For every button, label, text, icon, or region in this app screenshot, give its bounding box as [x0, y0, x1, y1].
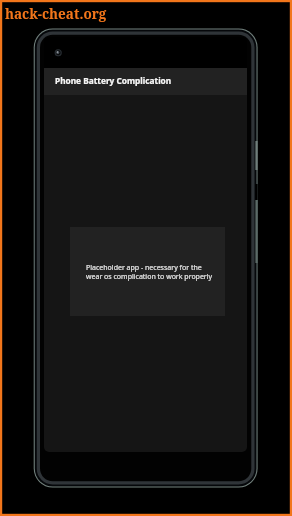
- staticText: Placeholder app - necessary for the wear…: [86, 263, 213, 281]
- staticText: Phone Battery Complication: [55, 75, 172, 86]
- button[interactable]: Phone Battery Complication: [44, 68, 247, 95]
- staticText: hack-cheat.org: [5, 5, 107, 23]
